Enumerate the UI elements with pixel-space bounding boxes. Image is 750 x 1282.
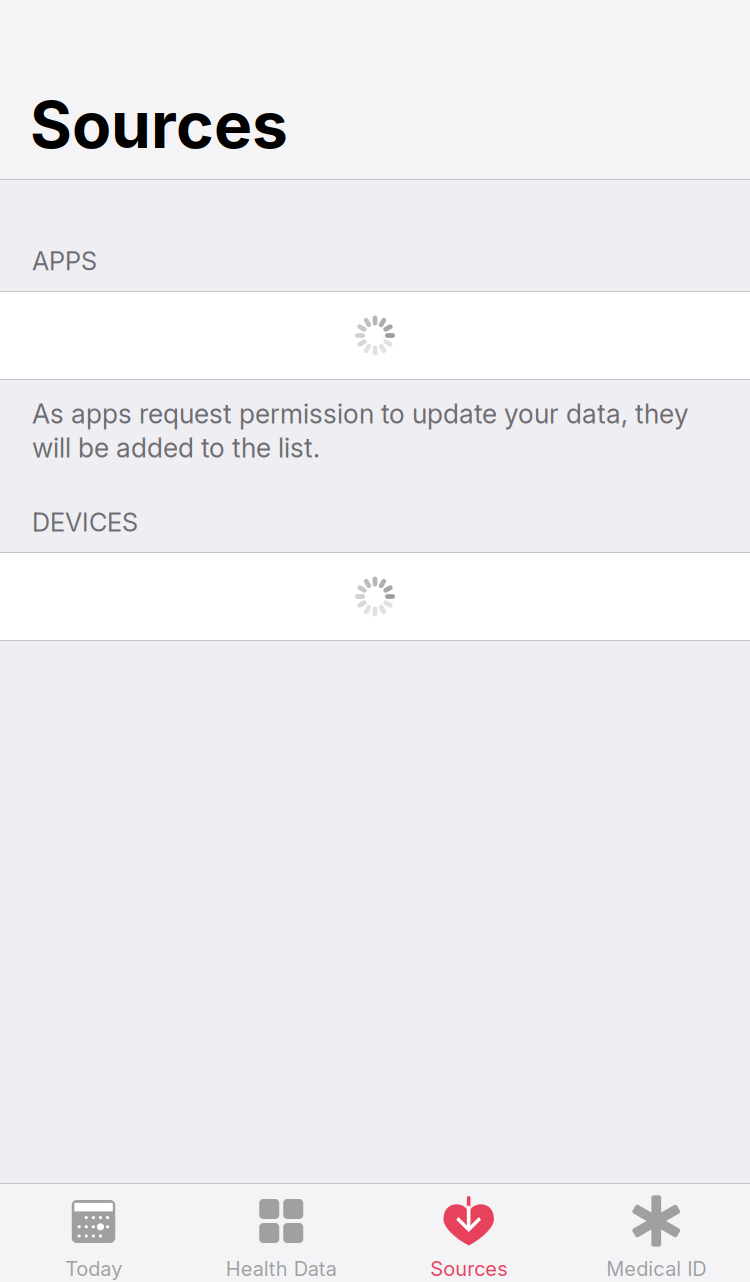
button[interactable]: Sources: [375, 1184, 562, 1282]
button[interactable]: Medical ID: [562, 1184, 750, 1282]
staticText: Today: [65, 1257, 122, 1281]
staticText: APPS: [32, 246, 97, 276]
staticText: DEVICES: [32, 507, 138, 537]
staticText: As apps request permission to update you…: [32, 398, 689, 463]
button[interactable]: Health Data: [187, 1184, 375, 1282]
staticText: Medical ID: [606, 1257, 706, 1281]
staticText: Health Data: [226, 1257, 337, 1281]
staticText: Sources: [30, 87, 288, 162]
button[interactable]: Today: [0, 1184, 187, 1282]
staticText: Sources: [430, 1257, 507, 1281]
